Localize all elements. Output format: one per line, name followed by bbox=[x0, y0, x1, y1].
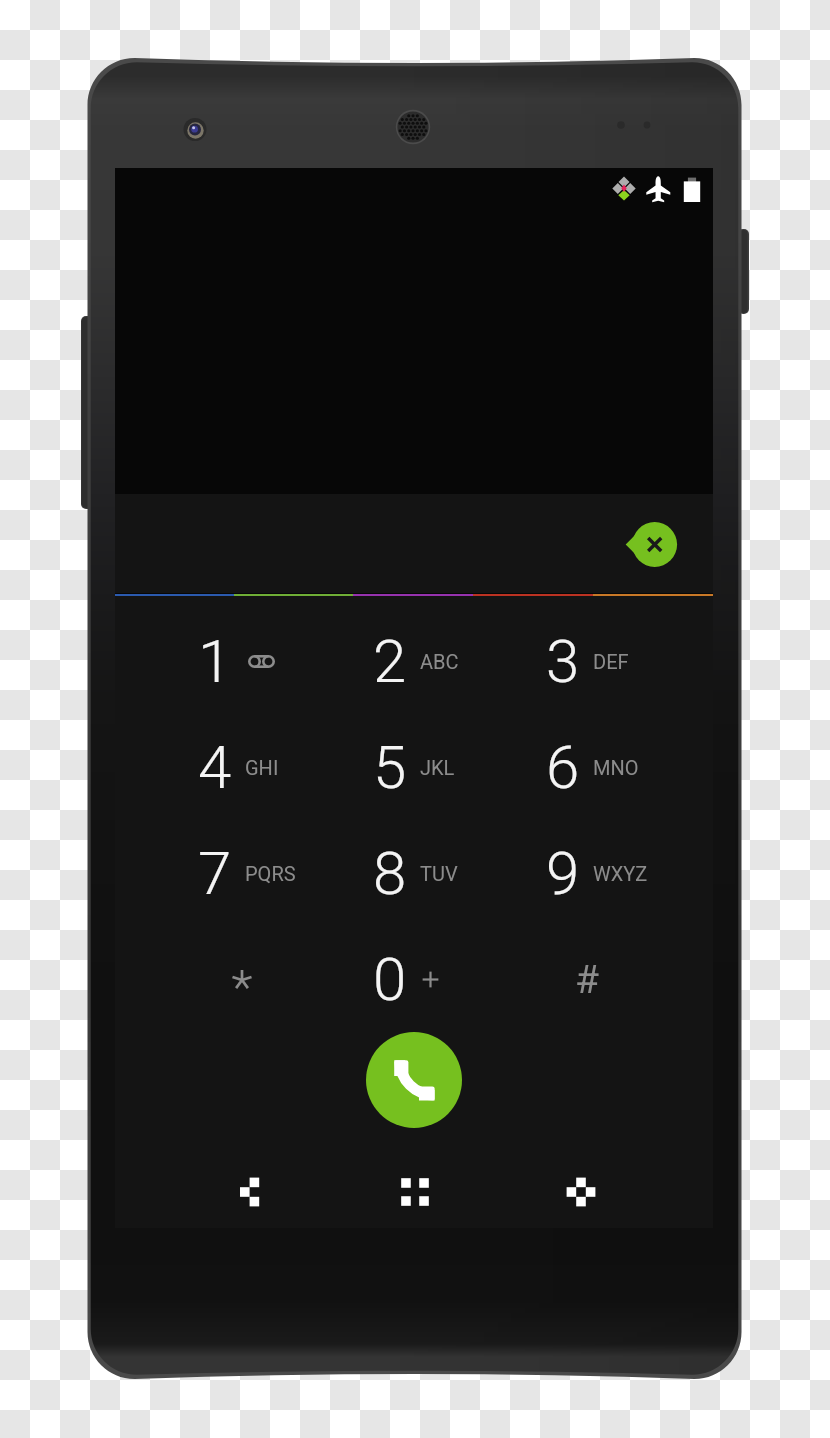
button[interactable] bbox=[151, 926, 326, 1032]
button[interactable]: Recent apps bbox=[551, 1162, 611, 1222]
button[interactable]: 6 bbox=[502, 714, 677, 820]
button[interactable]: 1 bbox=[151, 608, 326, 714]
staticText: # bbox=[575, 957, 600, 1003]
button[interactable]: Call bbox=[366, 1032, 462, 1128]
staticText: JKL bbox=[420, 756, 455, 779]
staticText: DEF bbox=[593, 650, 629, 673]
button[interactable]: Delete bbox=[613, 508, 699, 582]
staticText: 3 bbox=[546, 626, 580, 696]
staticText: 1 bbox=[198, 626, 232, 696]
staticText: ABC bbox=[420, 650, 459, 673]
staticText: MNO bbox=[593, 756, 639, 779]
button[interactable]: 7 bbox=[151, 820, 326, 926]
button[interactable]: Home bbox=[385, 1162, 445, 1222]
staticText: TUV bbox=[420, 862, 458, 885]
staticText: GHI bbox=[245, 756, 279, 779]
button[interactable]: 4 bbox=[151, 714, 326, 820]
button[interactable]: 0 bbox=[326, 926, 501, 1032]
button[interactable]: 9 bbox=[502, 820, 677, 926]
button[interactable]: 2 bbox=[326, 608, 501, 714]
staticText: 9 bbox=[546, 838, 580, 908]
button[interactable]: 8 bbox=[326, 820, 501, 926]
button[interactable]: # bbox=[502, 926, 677, 1032]
staticText: 5 bbox=[373, 732, 407, 802]
staticText: 4 bbox=[198, 732, 232, 802]
staticText: PQRS bbox=[245, 862, 296, 885]
staticText: WXYZ bbox=[593, 862, 648, 885]
button[interactable]: 5 bbox=[326, 714, 501, 820]
button[interactable]: Back bbox=[219, 1162, 279, 1222]
staticText: 6 bbox=[546, 732, 580, 802]
button[interactable]: 3 bbox=[502, 608, 677, 714]
staticText: 2 bbox=[373, 626, 407, 696]
staticText: 0 bbox=[373, 944, 407, 1014]
staticText: 7 bbox=[198, 838, 232, 908]
staticText: 8 bbox=[373, 838, 407, 908]
